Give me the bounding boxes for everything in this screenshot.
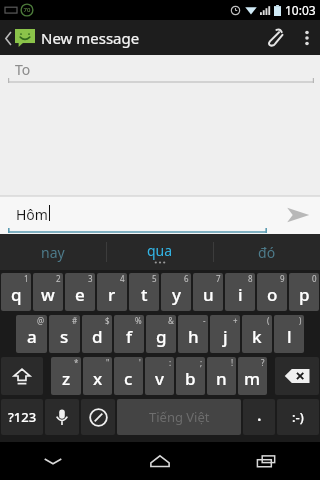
staticText: x [93, 367, 103, 390]
staticText: Tiếng Việt [149, 408, 210, 426]
staticText: 5 [152, 273, 157, 284]
button[interactable]: Back [0, 442, 106, 480]
button[interactable]: b [176, 357, 205, 395]
staticText: Hôm [16, 205, 48, 224]
button[interactable]: Recent apps [213, 442, 320, 480]
staticText: :-) [292, 408, 304, 426]
staticText: + [233, 315, 238, 326]
button[interactable]: k [242, 315, 272, 353]
staticText: q [11, 283, 22, 306]
button[interactable]: đó [214, 234, 320, 270]
button[interactable]: g [146, 315, 176, 353]
staticText: g [156, 325, 167, 348]
button[interactable]: Send [276, 196, 320, 234]
staticText: ' [139, 357, 141, 368]
staticText: u [203, 283, 214, 306]
staticText: l [287, 325, 292, 348]
button[interactable]: Delete [275, 357, 319, 395]
button[interactable]: h [178, 315, 208, 353]
staticText: ; [200, 357, 203, 368]
staticText: n [216, 367, 227, 390]
staticText: đó [258, 243, 276, 262]
staticText: 3 [88, 273, 93, 284]
button[interactable]: Home [106, 442, 213, 480]
button[interactable]: y [161, 273, 191, 311]
staticText: i [238, 283, 243, 306]
button[interactable]: w [33, 273, 63, 311]
staticText: : [169, 357, 172, 368]
button[interactable]: s [49, 315, 80, 353]
button[interactable]: Up [0, 24, 146, 52]
staticText: m [244, 367, 261, 390]
button[interactable]: Shift [1, 357, 43, 395]
staticText: p [299, 283, 310, 306]
staticText: k [252, 325, 262, 348]
button[interactable]: z [51, 357, 81, 395]
button[interactable]: u [193, 273, 223, 311]
staticText: 9 [280, 273, 285, 284]
staticText: # [72, 315, 78, 326]
staticText: z [62, 367, 71, 390]
button[interactable]: i [225, 273, 255, 311]
staticText: t [141, 283, 148, 306]
staticText: ! [231, 357, 234, 368]
button[interactable]: Attach [254, 20, 294, 55]
button[interactable]: . [243, 399, 275, 435]
staticText: r [108, 283, 116, 306]
staticText: " [106, 357, 110, 368]
button[interactable]: j [210, 315, 240, 353]
button[interactable]: t [129, 273, 159, 311]
staticText: v [155, 367, 164, 390]
staticText: & [168, 315, 174, 326]
button[interactable]: nay [0, 234, 106, 270]
button[interactable]: n [207, 357, 236, 395]
staticText: 6 [184, 273, 189, 284]
staticText: New message [41, 28, 140, 48]
button[interactable]: x [83, 357, 112, 395]
staticText: @ [37, 315, 45, 326]
staticText: 4 [120, 273, 125, 284]
staticText: ?123 [8, 408, 37, 426]
button[interactable]: v [145, 357, 174, 395]
staticText: 1 [24, 273, 29, 284]
staticText: To [15, 60, 31, 79]
staticText: e [75, 283, 85, 306]
staticText: 2 [56, 273, 61, 284]
button[interactable]: qua [107, 234, 213, 270]
staticText: 10:03 [285, 2, 316, 18]
button[interactable]: Hôm [8, 196, 273, 234]
staticText: . [257, 403, 262, 426]
staticText: 0 [312, 273, 317, 284]
button[interactable]: r [97, 273, 127, 311]
button[interactable]: q [1, 273, 31, 311]
button[interactable]: Tiếng Việt [117, 399, 241, 435]
button[interactable]: l [274, 315, 304, 353]
button[interactable]: ?123 [1, 399, 43, 435]
button[interactable]: To [8, 55, 314, 83]
staticText: qua [147, 241, 173, 260]
staticText: 7 [216, 273, 221, 284]
button[interactable]: More options [294, 20, 320, 55]
button[interactable]: d [82, 315, 112, 353]
staticText: $ [105, 315, 110, 326]
staticText: nay [41, 243, 65, 262]
button[interactable]: Switch language [81, 399, 115, 435]
staticText: y [172, 283, 181, 306]
button[interactable]: :-) [277, 399, 319, 435]
staticText: j [223, 325, 228, 348]
button[interactable]: Voice input [45, 399, 79, 435]
staticText: w [41, 283, 55, 306]
staticText: ) [299, 315, 302, 326]
button[interactable]: p [289, 273, 319, 311]
button[interactable]: o [257, 273, 287, 311]
button[interactable]: f [114, 315, 144, 353]
button[interactable]: c [114, 357, 143, 395]
staticText: o [267, 283, 278, 306]
staticText: s [60, 325, 69, 348]
staticText: h [188, 325, 199, 348]
button[interactable]: a [16, 315, 47, 353]
button[interactable]: m [238, 357, 267, 395]
button[interactable]: e [65, 273, 95, 311]
staticText: a [27, 325, 37, 348]
staticText: c [124, 367, 133, 390]
